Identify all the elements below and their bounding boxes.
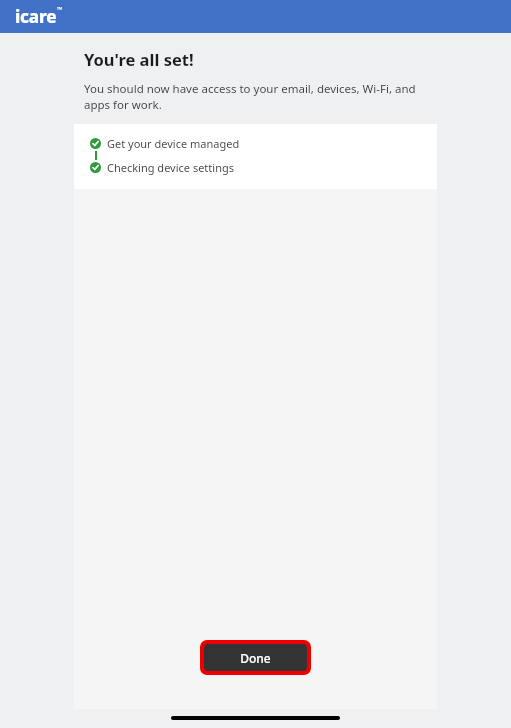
staticText: ™ — [57, 5, 63, 15]
staticText: Get your device managed — [107, 136, 240, 151]
button[interactable]: Done — [204, 644, 307, 671]
staticText: icare — [15, 5, 57, 28]
staticText: You're all set! — [84, 48, 194, 70]
staticText: Done — [240, 650, 271, 666]
staticText: You should now have access to your email… — [84, 81, 423, 112]
staticText: Checking device settings — [107, 160, 234, 175]
